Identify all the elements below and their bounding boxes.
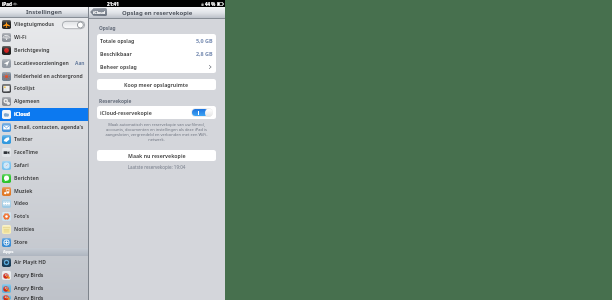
staticText: Opslag en reservekopie [122, 9, 193, 17]
button[interactable]: Algemeen [0, 95, 88, 108]
button[interactable]: Video [0, 197, 88, 210]
staticText: Air Playit HD [14, 259, 46, 266]
staticText: Laatste reservekopie: 19:04 [97, 164, 216, 170]
button[interactable]: Wi-Fi [0, 31, 88, 44]
staticText: Beheer opslag [100, 63, 137, 70]
staticText: Locatievoorzieningen [14, 60, 69, 67]
staticText: Fotolijst [14, 85, 35, 92]
button[interactable]: Fotolijst [0, 82, 88, 95]
staticText: Twitter [14, 136, 33, 143]
button[interactable]: Back to iCloud [90, 8, 107, 16]
staticText: iCloud [93, 10, 106, 15]
button[interactable]: Foto's [0, 210, 88, 223]
button[interactable]: Totale opslag [97, 34, 216, 47]
button[interactable]: Angry Birds [0, 295, 88, 300]
staticText: Aan [75, 60, 85, 67]
button[interactable]: iCloud [0, 108, 88, 121]
button[interactable]: Helderheid en achtergrond [0, 70, 88, 82]
button[interactable]: Beschikbaar [97, 47, 216, 60]
button[interactable]: iCloud-reservekopie [97, 106, 216, 119]
staticText: E-mail, contacten, agenda's [14, 124, 84, 131]
staticText: Beschikbaar [100, 50, 132, 57]
staticText: Opslag [99, 25, 116, 32]
staticText: Instellingen [26, 8, 62, 16]
staticText: 21:41 [107, 1, 119, 7]
staticText: Maak nu reservekopie [128, 152, 186, 159]
button[interactable]: Twitter [0, 133, 88, 146]
staticText: Totale opslag [100, 37, 135, 44]
staticText: Apps [3, 249, 14, 255]
staticText: Berichtgeving [14, 47, 50, 54]
staticText: Angry Birds [14, 295, 44, 300]
staticText: Vliegtuigmodus [14, 21, 55, 28]
staticText: 44 % [205, 1, 216, 7]
staticText: 5,0 GB [196, 37, 213, 44]
staticText: iCloud [14, 111, 31, 118]
staticText: Store [14, 239, 28, 246]
button[interactable]: Locatievoorzieningen [0, 57, 88, 70]
button[interactable]: E-mail, contacten, agenda's [0, 121, 88, 133]
button[interactable]: Angry Birds [0, 269, 88, 282]
button[interactable]: Airplane mode toggle [62, 21, 85, 29]
button[interactable]: Koop meer opslagruimte [97, 79, 216, 90]
staticText: 2,8 GB [196, 50, 213, 57]
button[interactable]: Notities [0, 223, 88, 236]
button[interactable]: Berichten [0, 172, 88, 185]
staticText: Reservekopie [99, 98, 132, 105]
staticText: iCloud-reservekopie [100, 109, 152, 116]
staticText: Algemeen [14, 98, 40, 105]
staticText: Maak automatisch een reservekopie van uw… [102, 122, 211, 142]
button[interactable]: Muziek [0, 185, 88, 197]
staticText: Helderheid en achtergrond [14, 73, 83, 80]
button[interactable]: iCloud backup toggle [191, 108, 213, 117]
button[interactable]: Berichtgeving [0, 44, 88, 57]
staticText: Koop meer opslagruimte [124, 81, 189, 88]
staticText: Foto's [14, 213, 30, 220]
staticText: Angry Birds [14, 272, 44, 279]
staticText: Berichten [14, 175, 39, 182]
staticText: iPad [2, 1, 12, 7]
staticText: FaceTime [14, 149, 38, 156]
staticText: Angry Birds [14, 285, 44, 292]
staticText: Wi-Fi [14, 34, 27, 41]
button[interactable]: Beheer opslag [97, 60, 216, 73]
staticText: Notities [14, 226, 35, 233]
button[interactable]: Store [0, 236, 88, 248]
staticText: Safari [14, 162, 29, 169]
staticText: Video [14, 200, 29, 207]
staticText: Muziek [14, 188, 33, 195]
button[interactable]: Angry Birds [0, 282, 88, 295]
button[interactable]: FaceTime [0, 146, 88, 159]
button[interactable]: Maak nu reservekopie [97, 150, 216, 161]
button[interactable]: Vliegtuigmodus [0, 18, 88, 31]
button[interactable]: Air Playit HD [0, 256, 88, 269]
button[interactable]: Safari [0, 159, 88, 172]
